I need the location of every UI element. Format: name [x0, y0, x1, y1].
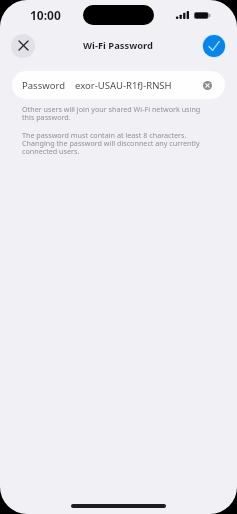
staticText: The password must contain at least 8 cha…	[22, 130, 202, 156]
staticText: Password	[22, 79, 65, 92]
staticText: 10:00	[30, 7, 61, 23]
staticText: exor-USAU-R1fJ-RNSH	[75, 79, 172, 92]
button[interactable]: Confirm	[202, 34, 226, 58]
button[interactable]: Clear text	[197, 75, 217, 95]
staticText: Wi-Fi Password	[83, 39, 154, 52]
button[interactable]: Close	[11, 34, 35, 58]
button[interactable]: Password	[12, 71, 225, 99]
staticText: Other users will join your shared Wi-Fi …	[22, 104, 202, 122]
